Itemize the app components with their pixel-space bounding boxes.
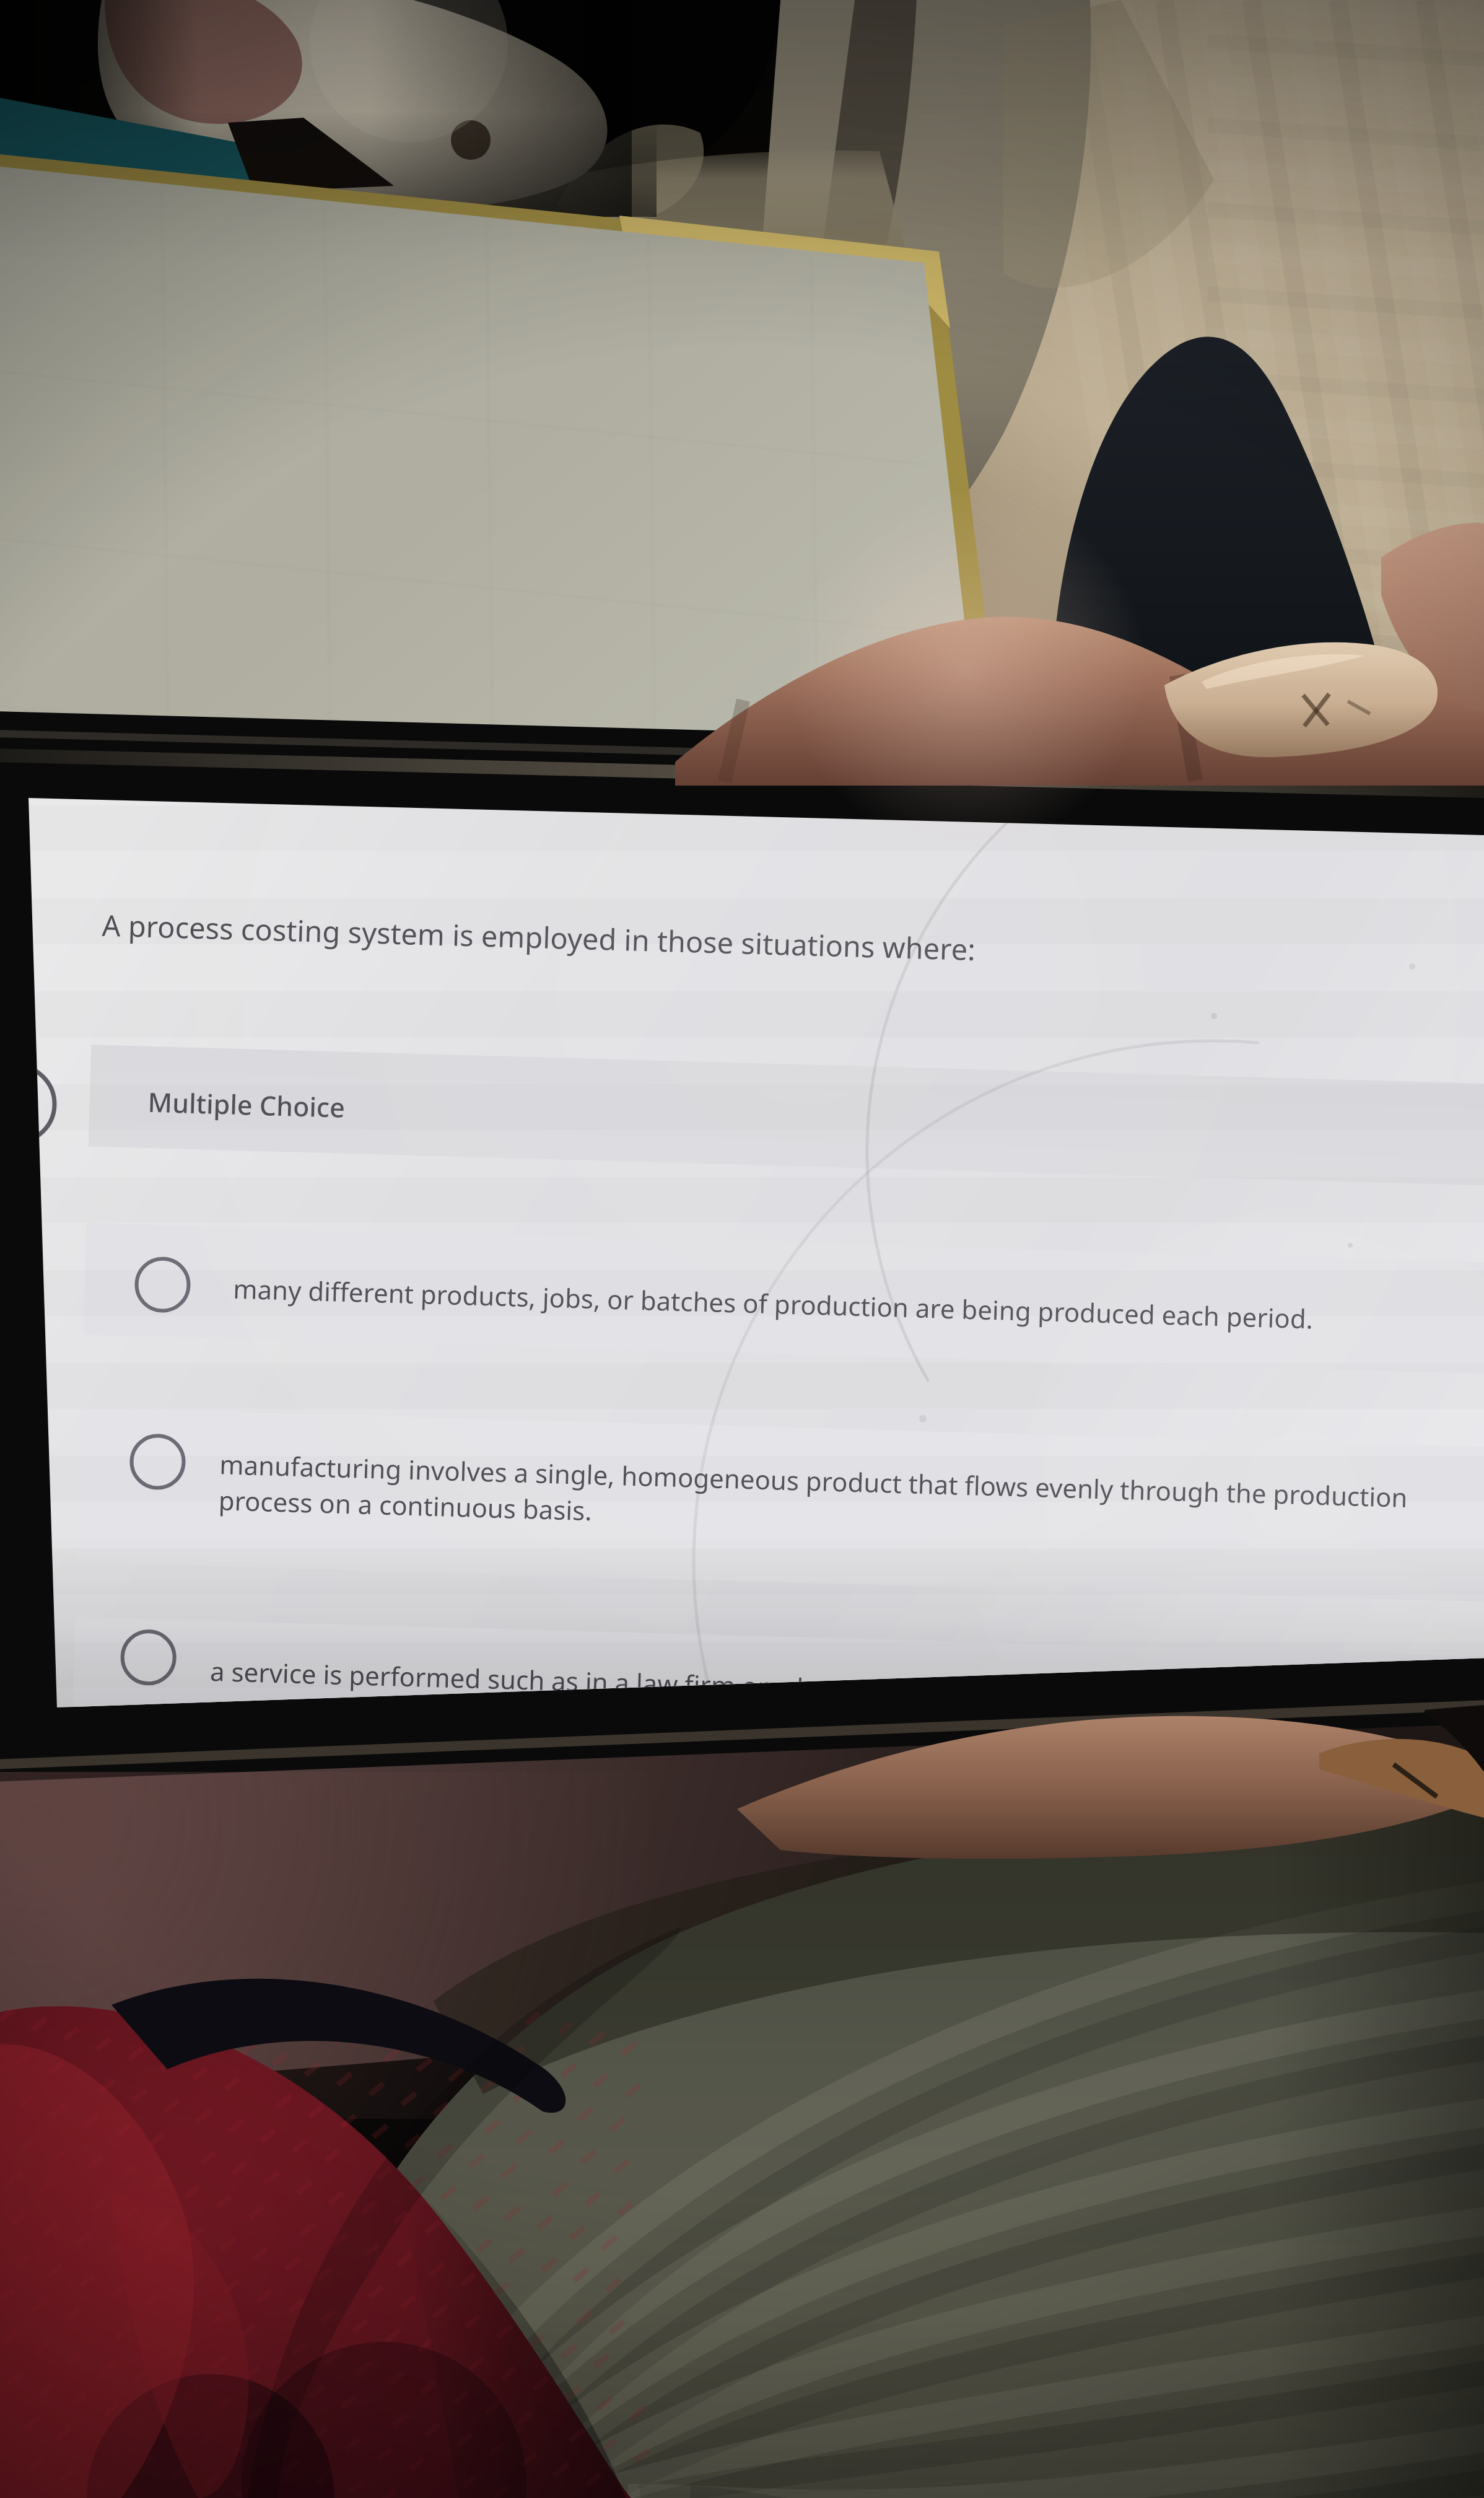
button[interactable]: Phone showing a multiple choice accounti… xyxy=(0,0,1484,2498)
